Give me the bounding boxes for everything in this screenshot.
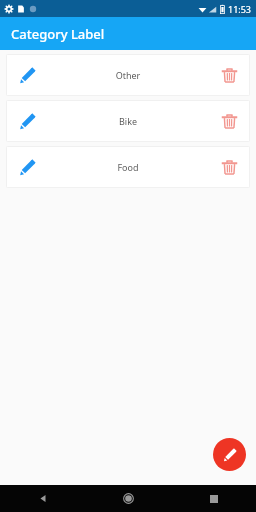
button[interactable]: Delete Food bbox=[216, 154, 242, 180]
button[interactable]: Edit Bike bbox=[6, 100, 250, 142]
button[interactable]: Recent apps bbox=[171, 485, 256, 512]
button[interactable]: Add category bbox=[213, 438, 246, 471]
staticText: Food bbox=[40, 161, 216, 173]
button[interactable]: Delete Other bbox=[216, 62, 242, 88]
button[interactable]: Edit Food bbox=[6, 146, 250, 188]
button[interactable]: Edit Food bbox=[14, 154, 40, 180]
button[interactable]: Edit Other bbox=[6, 54, 250, 96]
button[interactable]: Edit Other bbox=[14, 62, 40, 88]
staticText: Other bbox=[40, 69, 216, 81]
button[interactable]: Edit Bike bbox=[14, 108, 40, 134]
button[interactable]: Home bbox=[86, 485, 171, 512]
staticText: Bike bbox=[40, 115, 216, 127]
staticText: 11:53 bbox=[228, 3, 252, 15]
staticText: Category Label bbox=[11, 25, 105, 43]
button[interactable]: Back bbox=[0, 485, 86, 512]
button[interactable]: Delete Bike bbox=[216, 108, 242, 134]
